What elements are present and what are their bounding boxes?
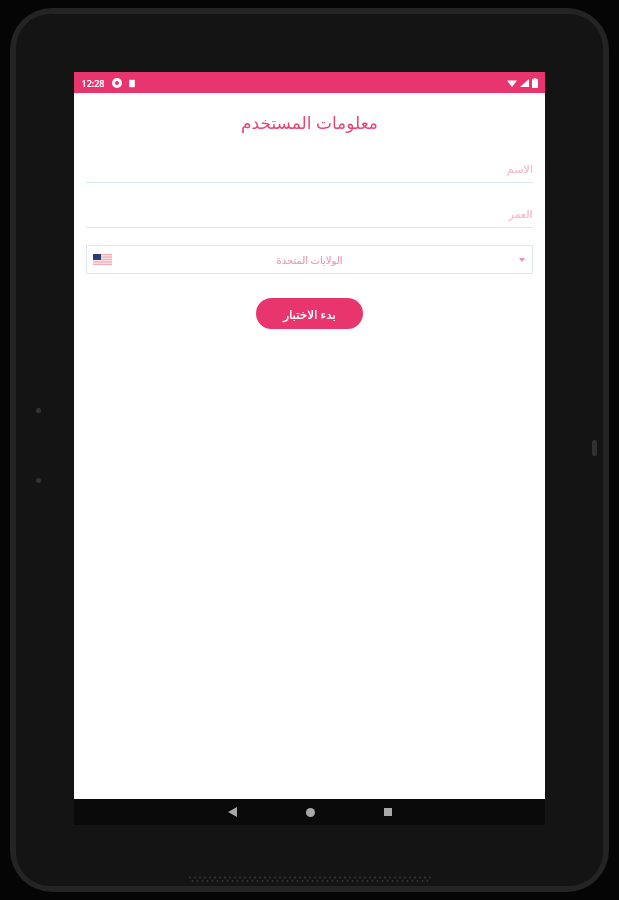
other: Select country xyxy=(519,258,525,262)
staticText: بدء الاختبار xyxy=(283,306,336,322)
staticText: معلومات المستخدم xyxy=(241,111,378,134)
button[interactable]: Recent apps xyxy=(349,799,427,825)
staticText: العمر xyxy=(508,208,533,221)
button[interactable]: Home xyxy=(271,799,349,825)
button[interactable]: الولايات المتحدة xyxy=(86,245,533,274)
staticText: 12:28 xyxy=(81,77,105,89)
button[interactable]: العمر xyxy=(86,201,533,228)
staticText: الاسم xyxy=(507,163,533,176)
button[interactable]: الاسم xyxy=(86,156,533,183)
button[interactable]: بدء الاختبار xyxy=(256,298,363,329)
staticText: الولايات المتحدة xyxy=(276,253,343,267)
button[interactable]: Back xyxy=(193,799,271,825)
